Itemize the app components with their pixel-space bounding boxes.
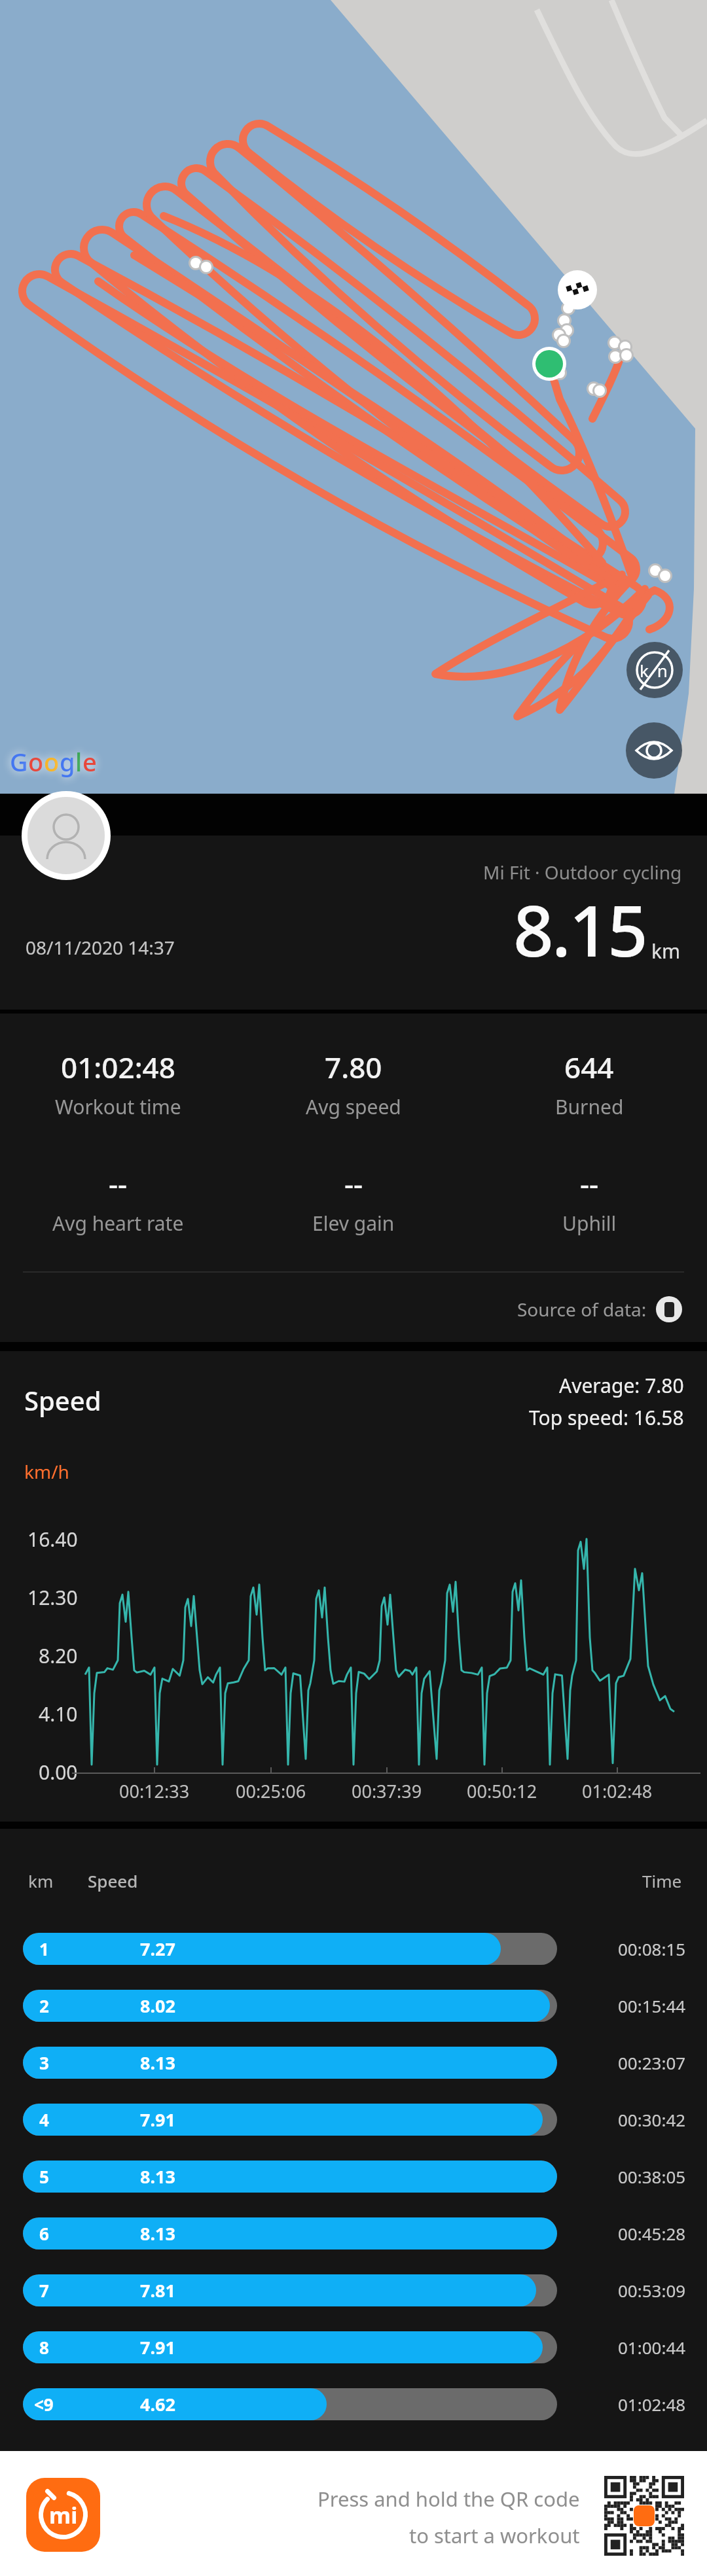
staticText: 2 (39, 1994, 49, 2017)
staticText: 01:02:48 (618, 2393, 686, 2416)
staticText: Time (642, 1869, 682, 1892)
staticText: o (28, 745, 44, 779)
staticText: 7.80 (325, 1048, 382, 1087)
staticText: 00:50:12 (467, 1779, 537, 1803)
staticText: 16.40 (27, 1526, 78, 1553)
staticText: g (60, 745, 75, 779)
staticText: to start a workout (409, 2522, 580, 2549)
staticText: -- (580, 1164, 599, 1203)
button[interactable]: k n (626, 642, 683, 698)
staticText: 7.81 (140, 2278, 175, 2303)
staticText: Avg heart rate (52, 1210, 184, 1237)
button[interactable]: <9 (23, 2388, 557, 2420)
staticText: Top speed: 16.58 (529, 1404, 684, 1431)
staticText: Uphill (562, 1210, 617, 1237)
staticText: 08/11/2020 14:37 (26, 935, 175, 960)
staticText: Source of data: (517, 1297, 647, 1322)
staticText: 00:08:15 (618, 1937, 686, 1960)
staticText: 7.91 (140, 2335, 175, 2359)
staticText: o (44, 745, 60, 779)
staticText: 7 (39, 2279, 49, 2302)
button[interactable]: mi (26, 2478, 100, 2552)
button[interactable] (604, 2476, 684, 2556)
staticText: Speed (88, 1869, 138, 1892)
staticText: 8.02 (140, 1994, 175, 2018)
staticText: 6 (39, 2222, 49, 2245)
staticText: 01:00:44 (618, 2336, 686, 2359)
staticText: Workout time (55, 1093, 181, 1120)
staticText: 00:23:07 (618, 2051, 686, 2074)
staticText: 8 (39, 2336, 49, 2359)
staticText: 1 (39, 1937, 49, 1960)
button[interactable]: 4 (23, 2104, 557, 2136)
staticText: Elev gain (312, 1210, 395, 1237)
staticText: 00:37:39 (352, 1779, 422, 1803)
staticText: 644 (564, 1048, 614, 1087)
button[interactable]: 8 (23, 2331, 557, 2363)
button[interactable]: 6 (23, 2217, 557, 2250)
staticText: Burned (555, 1093, 624, 1120)
staticText: 3 (39, 2051, 49, 2074)
staticText: km/h (24, 1459, 69, 1484)
staticText: 00:45:28 (618, 2222, 686, 2245)
staticText: k n (640, 659, 670, 682)
staticText: 7.27 (140, 1937, 175, 1961)
staticText: 7.91 (140, 2108, 175, 2132)
staticText: 00:15:44 (618, 1994, 686, 2017)
staticText: Avg speed (306, 1093, 401, 1120)
button[interactable] (22, 791, 111, 880)
staticText: l (75, 745, 82, 779)
button[interactable]: 7 (23, 2274, 557, 2306)
staticText: 5 (39, 2165, 49, 2188)
staticText: km (28, 1869, 54, 1892)
button[interactable] (656, 1296, 682, 1322)
staticText: km (651, 938, 681, 964)
staticText: Average: 7.80 (559, 1372, 684, 1399)
staticText: Mi Fit · Outdoor cycling (483, 860, 682, 885)
staticText: mi (49, 2500, 78, 2530)
staticText: 0.00 (39, 1759, 78, 1786)
staticText: 00:25:06 (236, 1779, 306, 1803)
staticText: 8.20 (39, 1642, 78, 1669)
staticText: -- (109, 1164, 128, 1203)
staticText: 01:02:48 (582, 1779, 653, 1803)
staticText: -- (344, 1164, 363, 1203)
staticText: G (10, 745, 28, 779)
staticText: Press and hold the QR code (317, 2485, 580, 2513)
staticText: 00:53:09 (618, 2279, 686, 2302)
staticText: 00:12:33 (119, 1779, 190, 1803)
staticText: 00:38:05 (618, 2165, 686, 2188)
staticText: e (82, 745, 97, 779)
button[interactable]: 1 (23, 1933, 557, 1965)
button[interactable]: 5 (23, 2161, 557, 2193)
staticText: 8.13 (140, 2164, 175, 2189)
button[interactable]: 2 (23, 1990, 557, 2022)
staticText: 8.13 (140, 2051, 175, 2075)
staticText: <9 (34, 2393, 54, 2416)
staticText: 01:02:48 (61, 1048, 175, 1087)
staticText: 8.15 (513, 881, 646, 978)
staticText: 4.10 (39, 1701, 78, 1727)
staticText: 8.13 (140, 2221, 175, 2246)
staticText: 4 (39, 2108, 49, 2131)
staticText: Speed (24, 1383, 101, 1418)
button[interactable] (626, 722, 682, 779)
staticText: 4.62 (140, 2392, 175, 2416)
button[interactable]: 3 (23, 2047, 557, 2079)
staticText: 00:30:42 (618, 2108, 686, 2131)
staticText: 12.30 (27, 1584, 78, 1611)
